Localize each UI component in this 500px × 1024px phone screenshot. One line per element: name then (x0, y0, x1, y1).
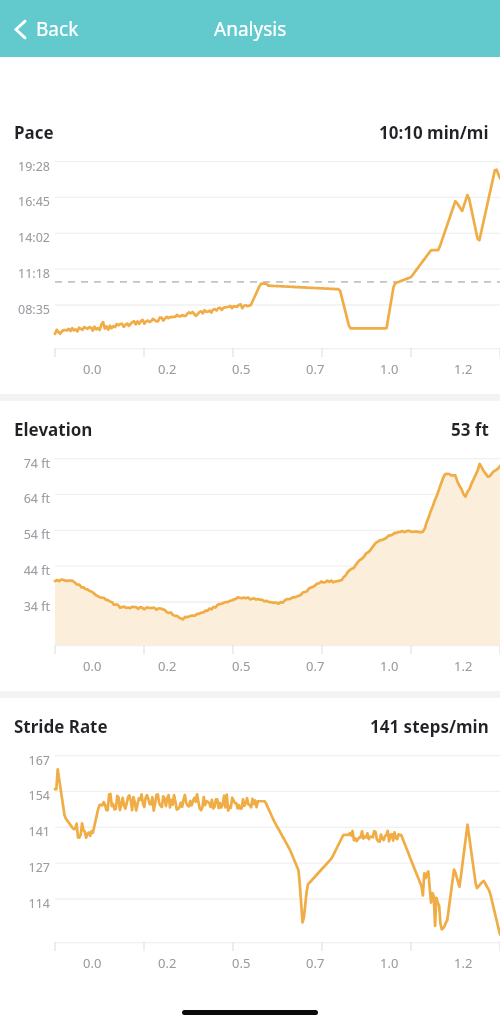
button[interactable]: Pace (0, 104, 500, 394)
staticText: 141 steps/min (370, 715, 489, 738)
staticText: Elevation (14, 418, 93, 441)
button[interactable]: Back (8, 8, 85, 50)
staticText: 74 ft (0, 455, 50, 472)
staticText: Pace (14, 121, 54, 144)
other: Back (14, 19, 27, 40)
staticText: 64 ft (0, 490, 50, 507)
staticText: 1.0 (380, 360, 399, 378)
staticText: 0.0 (83, 954, 102, 972)
staticText: 0.5 (232, 657, 251, 675)
staticText: Stride Rate (14, 715, 108, 738)
staticText: 14:02 (0, 229, 50, 246)
staticText: 0.7 (306, 360, 325, 378)
button[interactable]: Stride Rate (0, 698, 500, 988)
staticText: 167 (0, 752, 50, 769)
staticText: 1.2 (454, 360, 473, 378)
staticText: 0.2 (158, 360, 177, 378)
staticText: Back (36, 16, 79, 42)
staticText: 1.0 (380, 954, 399, 972)
staticText: 08:35 (0, 301, 50, 318)
staticText: 0.0 (83, 657, 102, 675)
staticText: 114 (0, 895, 50, 912)
staticText: 1.2 (454, 657, 473, 675)
staticText: 0.7 (306, 657, 325, 675)
staticText: 1.0 (380, 657, 399, 675)
staticText: 127 (0, 859, 50, 876)
staticText: 11:18 (0, 265, 50, 282)
staticText: 16:45 (0, 193, 50, 210)
staticText: 10:10 min/mi (379, 121, 489, 144)
staticText: 0.2 (158, 657, 177, 675)
staticText: 44 ft (0, 562, 50, 579)
staticText: 34 ft (0, 598, 50, 615)
staticText: 0.5 (232, 360, 251, 378)
staticText: 154 (0, 787, 50, 804)
staticText: 141 (0, 823, 50, 840)
staticText: 0.7 (306, 954, 325, 972)
staticText: 53 ft (451, 418, 489, 441)
staticText: 19:28 (0, 158, 50, 175)
staticText: 54 ft (0, 526, 50, 543)
staticText: Analysis (214, 16, 287, 42)
staticText: 0.2 (158, 954, 177, 972)
staticText: 0.5 (232, 954, 251, 972)
staticText: 0.0 (83, 360, 102, 378)
button[interactable]: Elevation (0, 401, 500, 691)
staticText: 1.2 (454, 954, 473, 972)
